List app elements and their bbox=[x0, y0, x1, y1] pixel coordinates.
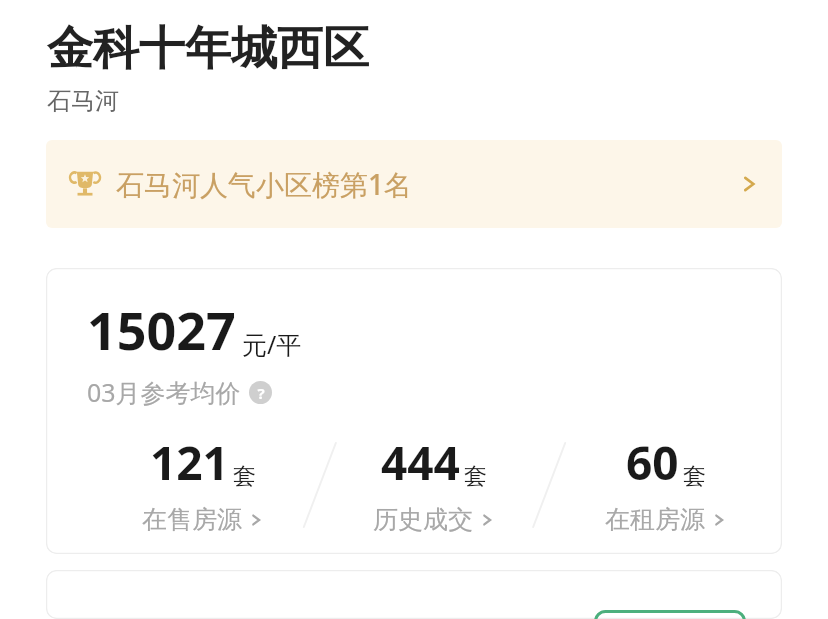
staticText: 金科十年城西区 bbox=[47, 20, 369, 78]
staticText: 套 bbox=[233, 462, 256, 491]
button[interactable] bbox=[594, 610, 746, 619]
staticText: 60 bbox=[626, 431, 679, 494]
staticText: 在租房源 bbox=[605, 504, 705, 535]
staticText: 444 bbox=[381, 431, 460, 494]
staticText: 石马河 bbox=[47, 86, 119, 116]
staticText: 石马河人气小区榜第1名 bbox=[116, 165, 413, 203]
staticText: 15027 bbox=[87, 294, 236, 365]
staticText: 元/平 bbox=[242, 327, 302, 361]
button[interactable]: 444 bbox=[318, 431, 550, 541]
staticText: 121 bbox=[150, 431, 229, 494]
staticText: ? bbox=[257, 383, 265, 403]
button[interactable]: 石马河人气小区榜第1名 bbox=[46, 140, 782, 228]
button[interactable]: 价格说明 bbox=[249, 381, 272, 404]
staticText: 套 bbox=[683, 462, 706, 491]
staticText: 历史成交 bbox=[373, 504, 473, 535]
staticText: 套 bbox=[464, 462, 487, 491]
staticText: 03月参考均价 bbox=[87, 375, 241, 409]
staticText: 在售房源 bbox=[142, 504, 242, 535]
button[interactable]: 121 bbox=[87, 431, 318, 541]
button[interactable]: 60 bbox=[550, 431, 782, 541]
